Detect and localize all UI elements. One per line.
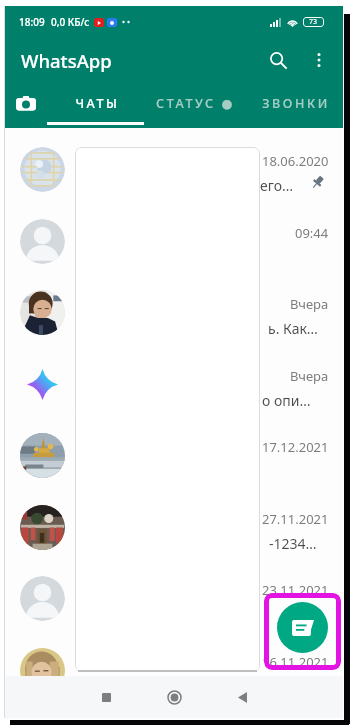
- button[interactable]: 16.11.2021: [5, 634, 343, 706]
- staticText: WhatsApp: [21, 48, 112, 73]
- button[interactable]: New chat: [264, 593, 341, 670]
- button[interactable]: Camera: [5, 82, 47, 125]
- button[interactable]: СТАТУС ●: [144, 82, 243, 125]
- button[interactable]: ЗВОНКИ: [243, 82, 343, 125]
- staticText: ь. Как…: [268, 319, 318, 338]
- staticText: 23.11.2021: [262, 581, 329, 599]
- staticText: Вчера: [290, 367, 329, 385]
- staticText: его…: [260, 176, 294, 195]
- button[interactable]: Recents: [87, 678, 125, 716]
- button[interactable]: Вчера: [5, 276, 343, 348]
- button[interactable]: Вчера: [5, 348, 343, 420]
- staticText: 27.11.2021: [262, 510, 329, 528]
- staticText: 18.06.2020: [262, 152, 329, 170]
- staticText: 16.11.2021: [262, 653, 329, 671]
- staticText: ЗВОНКИ: [262, 95, 330, 112]
- button[interactable]: Home: [155, 678, 193, 716]
- staticText: -1234…: [269, 534, 317, 553]
- staticText: СТАТУС ●: [156, 95, 235, 112]
- staticText: 18:09: [19, 15, 45, 29]
- button[interactable]: 27.11.2021: [5, 491, 343, 563]
- staticText: 09:44: [295, 224, 329, 242]
- button[interactable]: Search: [258, 40, 298, 80]
- staticText: о опи…: [262, 391, 311, 410]
- button[interactable]: More options: [299, 40, 339, 80]
- staticText: 17.12.2021: [262, 438, 329, 456]
- button[interactable]: 23.11.2021: [5, 562, 343, 634]
- button[interactable]: 09:44: [5, 205, 343, 277]
- staticText: 73: [309, 17, 318, 27]
- staticText: ЧАТЫ: [75, 95, 120, 112]
- button[interactable]: ЧАТЫ: [47, 82, 144, 125]
- button[interactable]: 17.12.2021: [5, 419, 343, 491]
- button[interactable]: Back: [223, 678, 261, 716]
- button[interactable]: 18.06.2020: [5, 133, 343, 205]
- staticText: Вчера: [290, 295, 329, 313]
- staticText: 0,0 КБ/с: [51, 15, 90, 29]
